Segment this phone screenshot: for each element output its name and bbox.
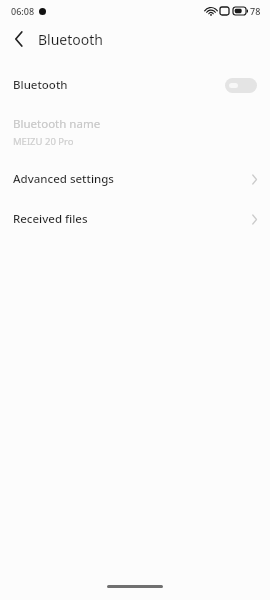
staticText: Received files [13, 211, 88, 227]
staticText: Advanced settings [13, 171, 114, 187]
staticText: 78 [250, 5, 261, 17]
button[interactable]: Advanced settings [0, 164, 270, 194]
staticText: Bluetooth [38, 30, 103, 49]
button[interactable]: Back [6, 26, 32, 52]
button[interactable]: Bluetooth toggle, off [225, 78, 257, 93]
staticText: Bluetooth name [13, 116, 101, 132]
button[interactable]: Bluetooth name [0, 114, 270, 150]
staticText: MEIZU 20 Pro [13, 135, 74, 148]
staticText: Bluetooth [13, 77, 68, 93]
staticText: 06:08 [11, 5, 35, 17]
button[interactable]: Received files [0, 204, 270, 234]
button[interactable]: Bluetooth [0, 68, 270, 102]
